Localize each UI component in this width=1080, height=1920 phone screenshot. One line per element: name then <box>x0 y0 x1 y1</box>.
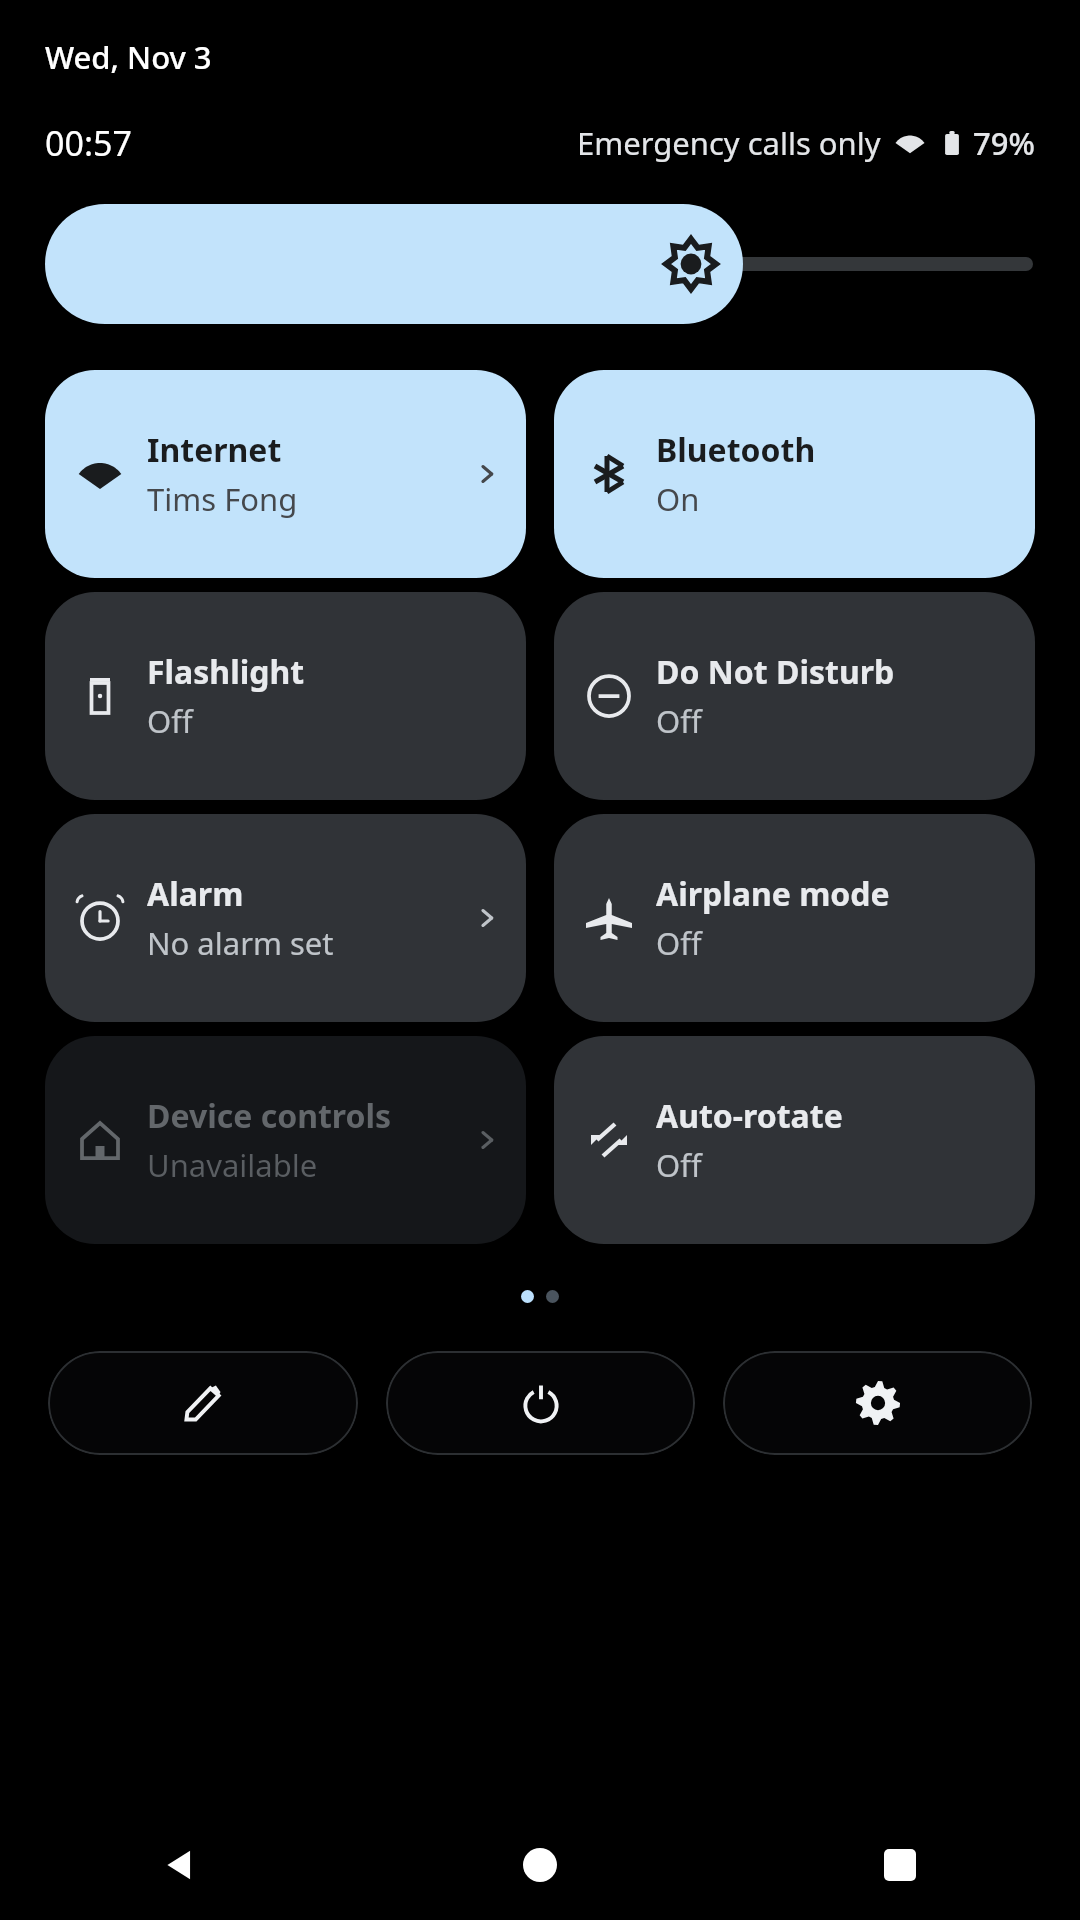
staticText: Airplane mode <box>656 872 890 916</box>
staticText: Alarm <box>147 872 244 916</box>
staticText: Off <box>656 1144 702 1186</box>
staticText: Off <box>147 700 193 742</box>
button[interactable]: Bluetooth <box>554 370 1035 578</box>
staticText: Unavailable <box>147 1144 318 1186</box>
button[interactable]: Power <box>386 1351 695 1455</box>
button[interactable]: Flashlight <box>45 592 526 800</box>
staticText: Auto-rotate <box>656 1094 843 1138</box>
button[interactable]: Recents <box>720 1810 1080 1920</box>
staticText: Flashlight <box>147 650 305 694</box>
button[interactable]: Edit <box>48 1351 358 1455</box>
staticText: No alarm set <box>147 922 334 964</box>
staticText: Emergency calls only <box>577 122 881 164</box>
button[interactable]: Brightness <box>45 204 743 324</box>
button[interactable]: Internet <box>45 370 526 578</box>
button[interactable]: Home <box>360 1810 720 1920</box>
button[interactable]: Settings <box>723 1351 1032 1455</box>
staticText: 00:57 <box>45 120 132 166</box>
button[interactable]: Auto-rotate <box>554 1036 1035 1244</box>
staticText: Wed, Nov 3 <box>45 36 212 78</box>
staticText: Off <box>656 700 702 742</box>
button[interactable]: Device controls <box>45 1036 526 1244</box>
staticText: Internet <box>147 428 282 472</box>
button[interactable]: Airplane mode <box>554 814 1035 1022</box>
staticText: Device controls <box>147 1094 392 1138</box>
staticText: On <box>656 478 700 520</box>
staticText: Tims Fong <box>147 478 298 520</box>
button[interactable]: Back <box>0 1810 360 1920</box>
staticText: Off <box>656 922 702 964</box>
staticText: Bluetooth <box>656 428 816 472</box>
button[interactable]: Do Not Disturb <box>554 592 1035 800</box>
staticText: 79% <box>973 122 1035 164</box>
button[interactable]: Alarm <box>45 814 526 1022</box>
staticText: Do Not Disturb <box>656 650 895 694</box>
